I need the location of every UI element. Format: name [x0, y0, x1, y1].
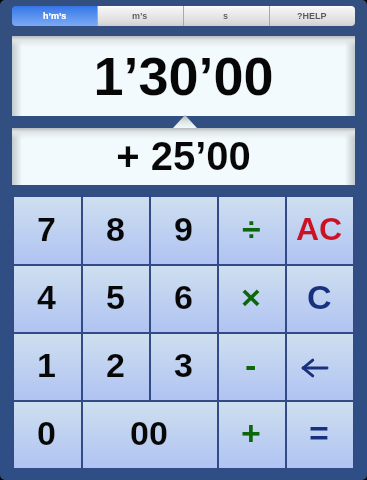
staticText: 6 [174, 278, 193, 316]
staticText: + [241, 414, 261, 452]
button[interactable]: s [183, 6, 269, 26]
staticText: × [241, 278, 261, 316]
button[interactable]: AC [287, 197, 353, 264]
button[interactable]: Equals [287, 402, 353, 468]
button[interactable]: Backspace [287, 334, 353, 400]
staticText: 0 [37, 414, 56, 452]
staticText: 7 [37, 210, 56, 248]
staticText: ÷ [242, 210, 261, 248]
button[interactable]: 4 [14, 266, 81, 332]
staticText: 9 [174, 210, 193, 248]
button[interactable]: ÷ [219, 197, 285, 264]
staticText: 1’30’00 [93, 46, 274, 106]
staticText: 1 [37, 346, 56, 384]
staticText: 4 [37, 278, 56, 316]
staticText: 8 [106, 210, 125, 248]
button[interactable]: ?HELP [269, 6, 355, 26]
other: Equals [309, 414, 329, 452]
staticText: AC [296, 211, 343, 247]
staticText: h’m’s [43, 11, 67, 21]
staticText: + 25’00 [116, 134, 251, 179]
button[interactable]: m’s [97, 6, 183, 26]
button[interactable]: 00 [83, 402, 217, 468]
button[interactable]: 1 [14, 334, 81, 400]
staticText: 3 [174, 346, 193, 384]
staticText: m’s [132, 11, 148, 21]
button[interactable]: h’m’s [12, 6, 97, 26]
button[interactable]: 2 [83, 334, 149, 400]
button[interactable]: × [219, 266, 285, 332]
other: Backspace [286, 332, 352, 398]
button[interactable]: 0 [14, 402, 81, 468]
button[interactable]: C [287, 266, 353, 332]
staticText: 2 [106, 346, 125, 384]
staticText: = [309, 414, 329, 452]
button[interactable]: 7 [14, 197, 81, 264]
staticText: 5 [106, 278, 125, 316]
button[interactable]: - [219, 334, 285, 400]
staticText: C [307, 278, 332, 316]
button[interactable]: 6 [151, 266, 217, 332]
staticText: - [245, 346, 257, 384]
button[interactable]: 3 [151, 334, 217, 400]
staticText: 00 [130, 414, 168, 452]
button[interactable]: 9 [151, 197, 217, 264]
button[interactable]: + [219, 402, 285, 468]
button[interactable]: 8 [83, 197, 149, 264]
staticText: s [223, 11, 229, 21]
button[interactable]: 5 [83, 266, 149, 332]
staticText: ?HELP [297, 11, 327, 21]
